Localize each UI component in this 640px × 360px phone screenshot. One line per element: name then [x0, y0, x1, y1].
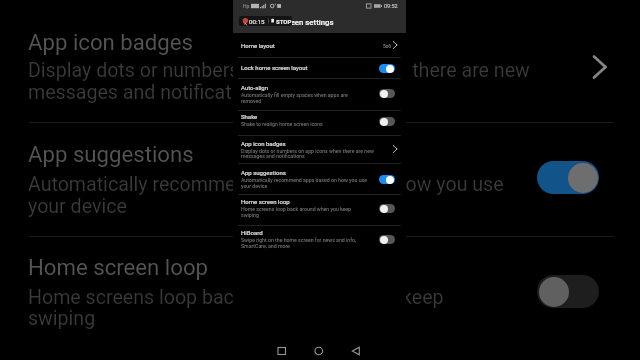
button[interactable]: Back: [348, 343, 366, 359]
button[interactable]: HiBoard: [379, 235, 395, 244]
staticText: your device: [241, 183, 268, 189]
staticText: Home screen loop: [241, 198, 290, 205]
button[interactable]: [233, 193, 406, 223]
staticText: Home screen settings: [257, 18, 334, 27]
button[interactable]: App suggestions on: [537, 161, 599, 194]
button[interactable]: Auto-align: [379, 89, 395, 98]
button[interactable]: [233, 135, 406, 165]
staticText: Automatically recommend apps based on ho…: [241, 177, 367, 183]
button[interactable]: [233, 37, 406, 56]
button[interactable]: Recent apps: [274, 343, 292, 359]
staticText: Ηρ: [243, 3, 250, 9]
staticText: Shake to realign home screen icons: [241, 121, 323, 127]
staticText: Swipe right on the home screen for news …: [241, 237, 356, 243]
button[interactable]: App suggestions: [379, 175, 395, 184]
button[interactable]: App icon badges options: [576, 43, 624, 91]
button[interactable]: [233, 108, 406, 133]
staticText: swiping: [241, 212, 259, 218]
button[interactable]: Navigate up: [236, 15, 250, 29]
staticText: Home screens loop back around when you k…: [28, 286, 444, 309]
button[interactable]: Lock home screen layout: [379, 64, 395, 73]
staticText: Home screen loop: [28, 254, 209, 280]
button[interactable]: [233, 164, 406, 194]
button[interactable]: Home: [311, 343, 329, 359]
staticText: 00:15: [249, 18, 265, 25]
button[interactable]: Shake: [379, 117, 395, 126]
staticText: Automatically fill empty spaces when app…: [241, 92, 348, 98]
staticText: messages and notifications: [241, 153, 305, 159]
staticText: Home screens loop back around when you k…: [241, 206, 352, 212]
staticText: messages and notificat: [28, 81, 232, 104]
button[interactable]: App icon badges: [388, 142, 402, 156]
staticText: Automatically recommend apps based on ho…: [28, 173, 504, 196]
staticText: removed: [241, 98, 262, 104]
staticText: HiBoard: [241, 229, 263, 236]
button[interactable]: Home screen loop: [379, 204, 395, 213]
staticText: STOP: [276, 18, 292, 25]
staticText: Auto-align: [241, 84, 269, 91]
staticText: SmartCare, and more: [241, 243, 290, 249]
button[interactable]: [233, 224, 406, 254]
staticText: Lock home screen layout: [241, 64, 308, 71]
staticText: Display dots or numbers on app icons whe…: [241, 148, 374, 154]
staticText: swiping: [28, 307, 96, 330]
button[interactable]: [233, 59, 406, 78]
staticText: Home layout: [241, 42, 275, 49]
staticText: App suggestions: [28, 141, 194, 167]
staticText: 5x6: [383, 43, 392, 49]
staticText: Shake: [241, 113, 258, 120]
staticText: App icon badges: [241, 140, 286, 147]
button[interactable]: Stop screen recording: [239, 16, 292, 26]
button[interactable]: Home screen loop off: [537, 275, 599, 308]
staticText: App suggestions: [241, 169, 286, 176]
button[interactable]: [233, 79, 406, 109]
staticText: your device: [28, 195, 127, 218]
staticText: 09:52: [384, 3, 398, 9]
button[interactable]: Home layout: [388, 38, 402, 52]
staticText: App icon badges: [28, 29, 194, 55]
staticText: Display dots or numbers on app icons whe…: [28, 59, 530, 82]
